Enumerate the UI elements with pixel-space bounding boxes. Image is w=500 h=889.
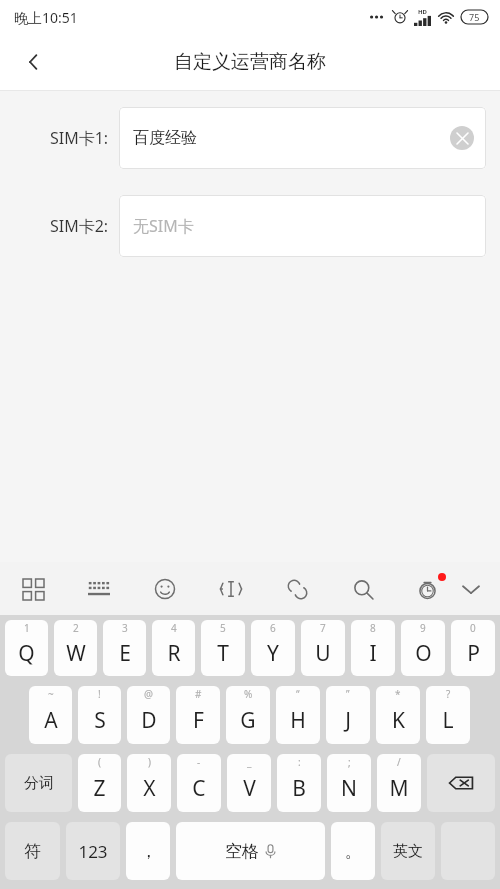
button[interactable]: B (277, 754, 321, 812)
button[interactable]: 无SIM卡 (119, 195, 486, 257)
staticText: 3 (122, 621, 128, 635)
staticText: T (217, 639, 229, 668)
staticText: 百度经验 (133, 128, 197, 148)
button[interactable]: W (54, 620, 97, 676)
staticText: 4 (171, 621, 177, 635)
staticText: 英文 (393, 842, 423, 861)
staticText: ; (348, 755, 351, 769)
button[interactable]: 表情 (148, 572, 182, 606)
button[interactable]: 空格 (176, 822, 325, 880)
staticText: L (442, 706, 454, 735)
button[interactable]: K (376, 686, 420, 744)
staticText: 0 (470, 621, 476, 635)
button[interactable]: 返回 (10, 38, 58, 86)
button[interactable]: 删除 (427, 754, 495, 812)
staticText: @ (144, 687, 153, 701)
button[interactable]: D (127, 686, 170, 744)
staticText: 分词 (24, 774, 54, 793)
button[interactable]: I (351, 620, 395, 676)
staticText: SIM卡2: (50, 215, 109, 237)
staticText: ， (140, 841, 157, 862)
staticText: H (290, 706, 306, 735)
staticText: K (392, 706, 405, 735)
staticText: 8 (370, 621, 376, 635)
button[interactable]: F (176, 686, 220, 744)
button[interactable]: Q (5, 620, 48, 676)
button[interactable]: S (78, 686, 121, 744)
button[interactable]: L (426, 686, 470, 744)
staticText: O (415, 639, 432, 668)
staticText: 晚上10:51 (14, 8, 78, 27)
staticText: F (193, 706, 204, 735)
staticText: ~ (48, 687, 54, 701)
button[interactable]: E (103, 620, 146, 676)
staticText: E (119, 639, 131, 668)
button[interactable]: 键盘 (82, 572, 116, 606)
staticText: 123 (78, 840, 108, 863)
button[interactable]: T (201, 620, 245, 676)
button[interactable]: 计时 (410, 572, 444, 606)
staticText: HD (418, 8, 427, 16)
button[interactable]: H (276, 686, 320, 744)
staticText: SIM卡1: (50, 127, 109, 149)
staticText: G (240, 706, 256, 735)
button[interactable]: 收起键盘 (454, 572, 488, 606)
staticText: 2 (73, 621, 79, 635)
staticText: 符 (24, 841, 41, 862)
button[interactable]: 面板 (16, 572, 50, 606)
staticText: M (389, 774, 409, 803)
staticText: J (345, 706, 351, 735)
button[interactable]: O (401, 620, 445, 676)
staticText: C (192, 774, 206, 803)
button[interactable]: U (301, 620, 345, 676)
staticText: Y (267, 639, 279, 668)
staticText: V (243, 774, 256, 803)
button[interactable]: 百度经验 (119, 107, 486, 169)
button[interactable]: J (326, 686, 370, 744)
staticText: N (341, 774, 357, 803)
button[interactable]: R (152, 620, 195, 676)
staticText: A (44, 706, 58, 735)
staticText: Z (93, 774, 106, 803)
button[interactable]: X (127, 754, 171, 812)
staticText: 空格 (225, 841, 259, 862)
staticText: R (167, 639, 181, 668)
button[interactable]: 清除 (450, 126, 474, 150)
staticText: “ (296, 687, 300, 701)
staticText: * (395, 687, 401, 701)
button[interactable]: C (177, 754, 221, 812)
staticText: ” (346, 687, 350, 701)
staticText: ) (148, 755, 151, 769)
button[interactable]: 搜索 (346, 572, 380, 606)
staticText: 自定义运营商名称 (174, 50, 326, 74)
staticText: 5 (220, 621, 226, 635)
button[interactable]: 分词 (5, 754, 72, 812)
staticText: W (66, 639, 86, 668)
button[interactable]: ， (126, 822, 170, 880)
staticText: _ (247, 755, 252, 769)
button[interactable]: 光标 (214, 572, 248, 606)
button[interactable]: N (327, 754, 371, 812)
button[interactable]: G (226, 686, 270, 744)
button[interactable]: 英文 (381, 822, 435, 880)
button[interactable]: M (377, 754, 421, 812)
button[interactable]: 剪贴板 (280, 572, 314, 606)
staticText: S (94, 706, 106, 735)
staticText: ! (98, 687, 101, 701)
button[interactable]: A (29, 686, 72, 744)
staticText: 9 (420, 621, 426, 635)
button[interactable]: Y (251, 620, 295, 676)
staticText: 无SIM卡 (133, 215, 194, 237)
button[interactable]: P (451, 620, 495, 676)
button[interactable]: 123 (66, 822, 120, 880)
button[interactable]: 符 (5, 822, 60, 880)
staticText: B (292, 774, 306, 803)
staticText: 6 (270, 621, 276, 635)
button[interactable]: Z (78, 754, 121, 812)
staticText: - (197, 755, 201, 769)
staticText: / (397, 755, 401, 769)
button[interactable]: 。 (331, 822, 375, 880)
button[interactable]: V (227, 754, 271, 812)
staticText: % (244, 687, 253, 701)
